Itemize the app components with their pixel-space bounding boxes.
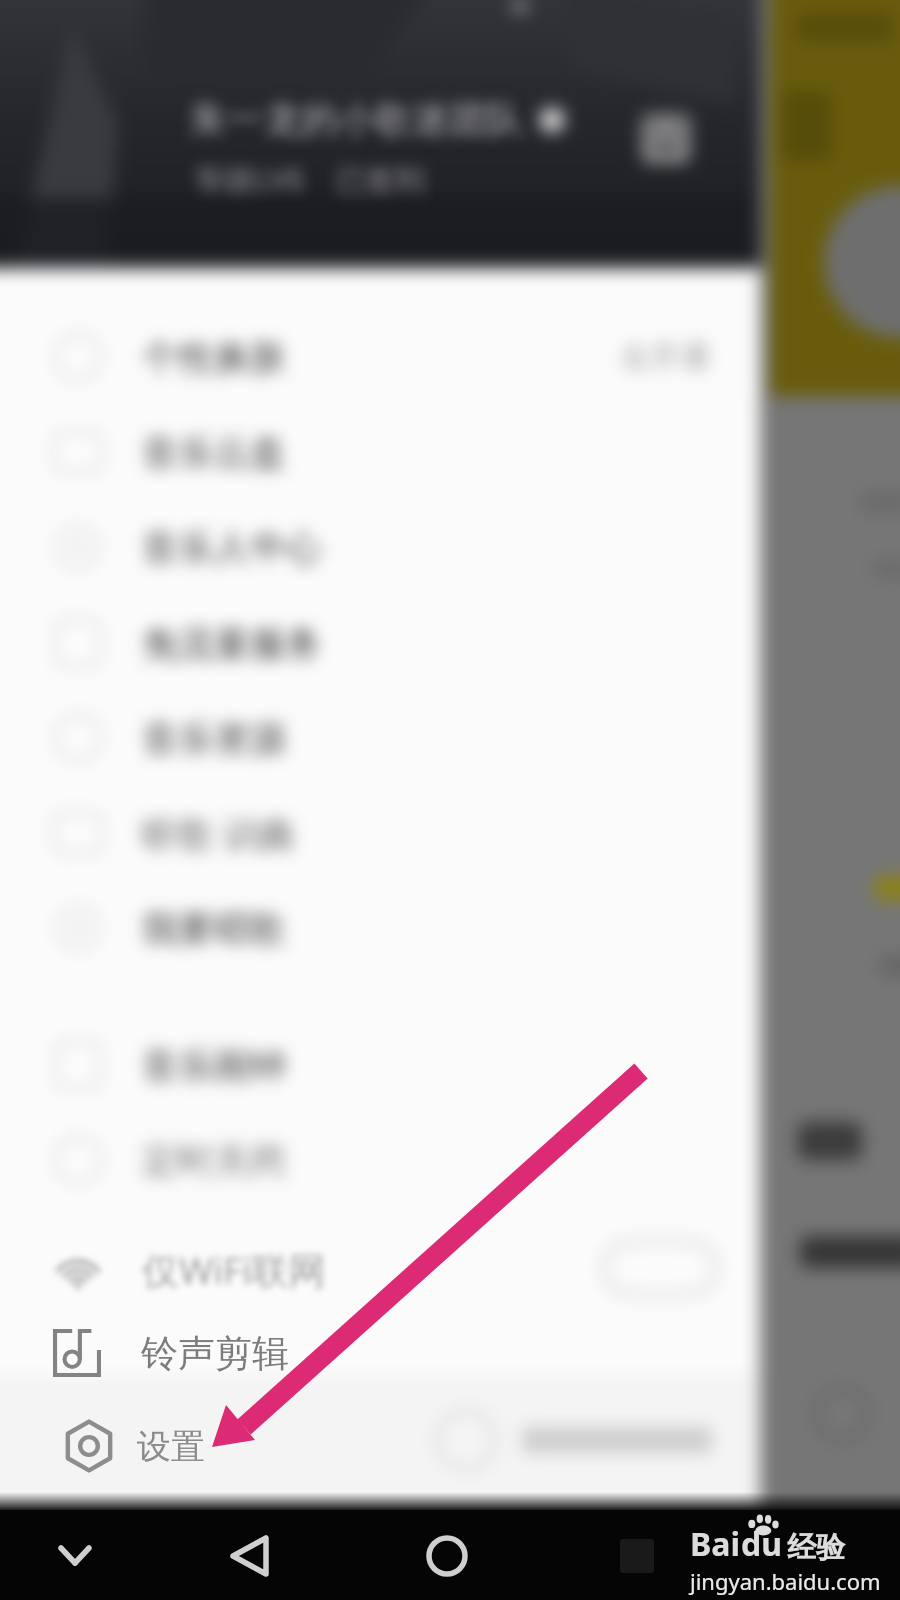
staticText: 朱一龙的小歌迷团队 — [190, 96, 523, 143]
staticText: jingyan.baidu.com — [690, 1566, 881, 1596]
staticText: 仅WiFi联网 — [142, 1244, 326, 1295]
button[interactable]: 朱一龙的小歌迷团队 — [190, 96, 523, 143]
button[interactable]: Recents — [602, 1522, 672, 1586]
staticText: 音乐资源 — [142, 716, 286, 761]
staticText: 等级LV6 已签到 — [194, 158, 426, 199]
staticText: 音乐云盘 — [142, 430, 286, 475]
staticText: 定时关闭 — [142, 1138, 286, 1183]
button[interactable]: 音乐闹钟 — [0, 1018, 760, 1112]
staticText: 免流量服务 — [142, 621, 322, 666]
staticText: 听歌 识曲 — [142, 809, 296, 858]
button[interactable]: Settings — [0, 1398, 760, 1494]
other: Settings — [63, 1420, 115, 1472]
button[interactable]: Ringtone editor — [0, 1322, 760, 1384]
other: Ringtone editor — [53, 1329, 101, 1377]
button[interactable]: 听歌 识曲 — [0, 786, 760, 880]
button[interactable]: Hide keyboard — [40, 1522, 110, 1586]
staticText: 去开通 — [620, 338, 710, 376]
other: Wi-Fi only — [50, 1241, 106, 1297]
button[interactable]: 音乐云盘 — [0, 405, 760, 499]
button[interactable]: 个性换肤 — [0, 310, 760, 404]
staticText: Bai — [690, 1522, 741, 1566]
staticText: 铃声剪辑 — [141, 1330, 289, 1377]
staticText: 经验 — [787, 1529, 845, 1566]
staticText: 音乐人中心 — [142, 525, 322, 570]
button[interactable]: 免流量服务 — [0, 596, 760, 690]
button[interactable]: Back — [216, 1522, 286, 1586]
button[interactable]: 音乐人中心 — [0, 500, 760, 594]
staticText: 设置 — [137, 1425, 205, 1468]
button[interactable]: Home — [413, 1522, 483, 1586]
staticText: 音乐闹钟 — [142, 1043, 286, 1088]
button[interactable]: 我要唱歌 — [0, 881, 760, 975]
button[interactable]: 定时关闭 — [0, 1113, 760, 1207]
staticText: du — [741, 1522, 783, 1566]
staticText: 我要唱歌 — [142, 906, 286, 951]
button[interactable]: 音乐资源 — [0, 691, 760, 785]
button[interactable]: Wi-Fi only — [0, 1222, 760, 1316]
staticText: 个性换肤 — [142, 335, 286, 380]
